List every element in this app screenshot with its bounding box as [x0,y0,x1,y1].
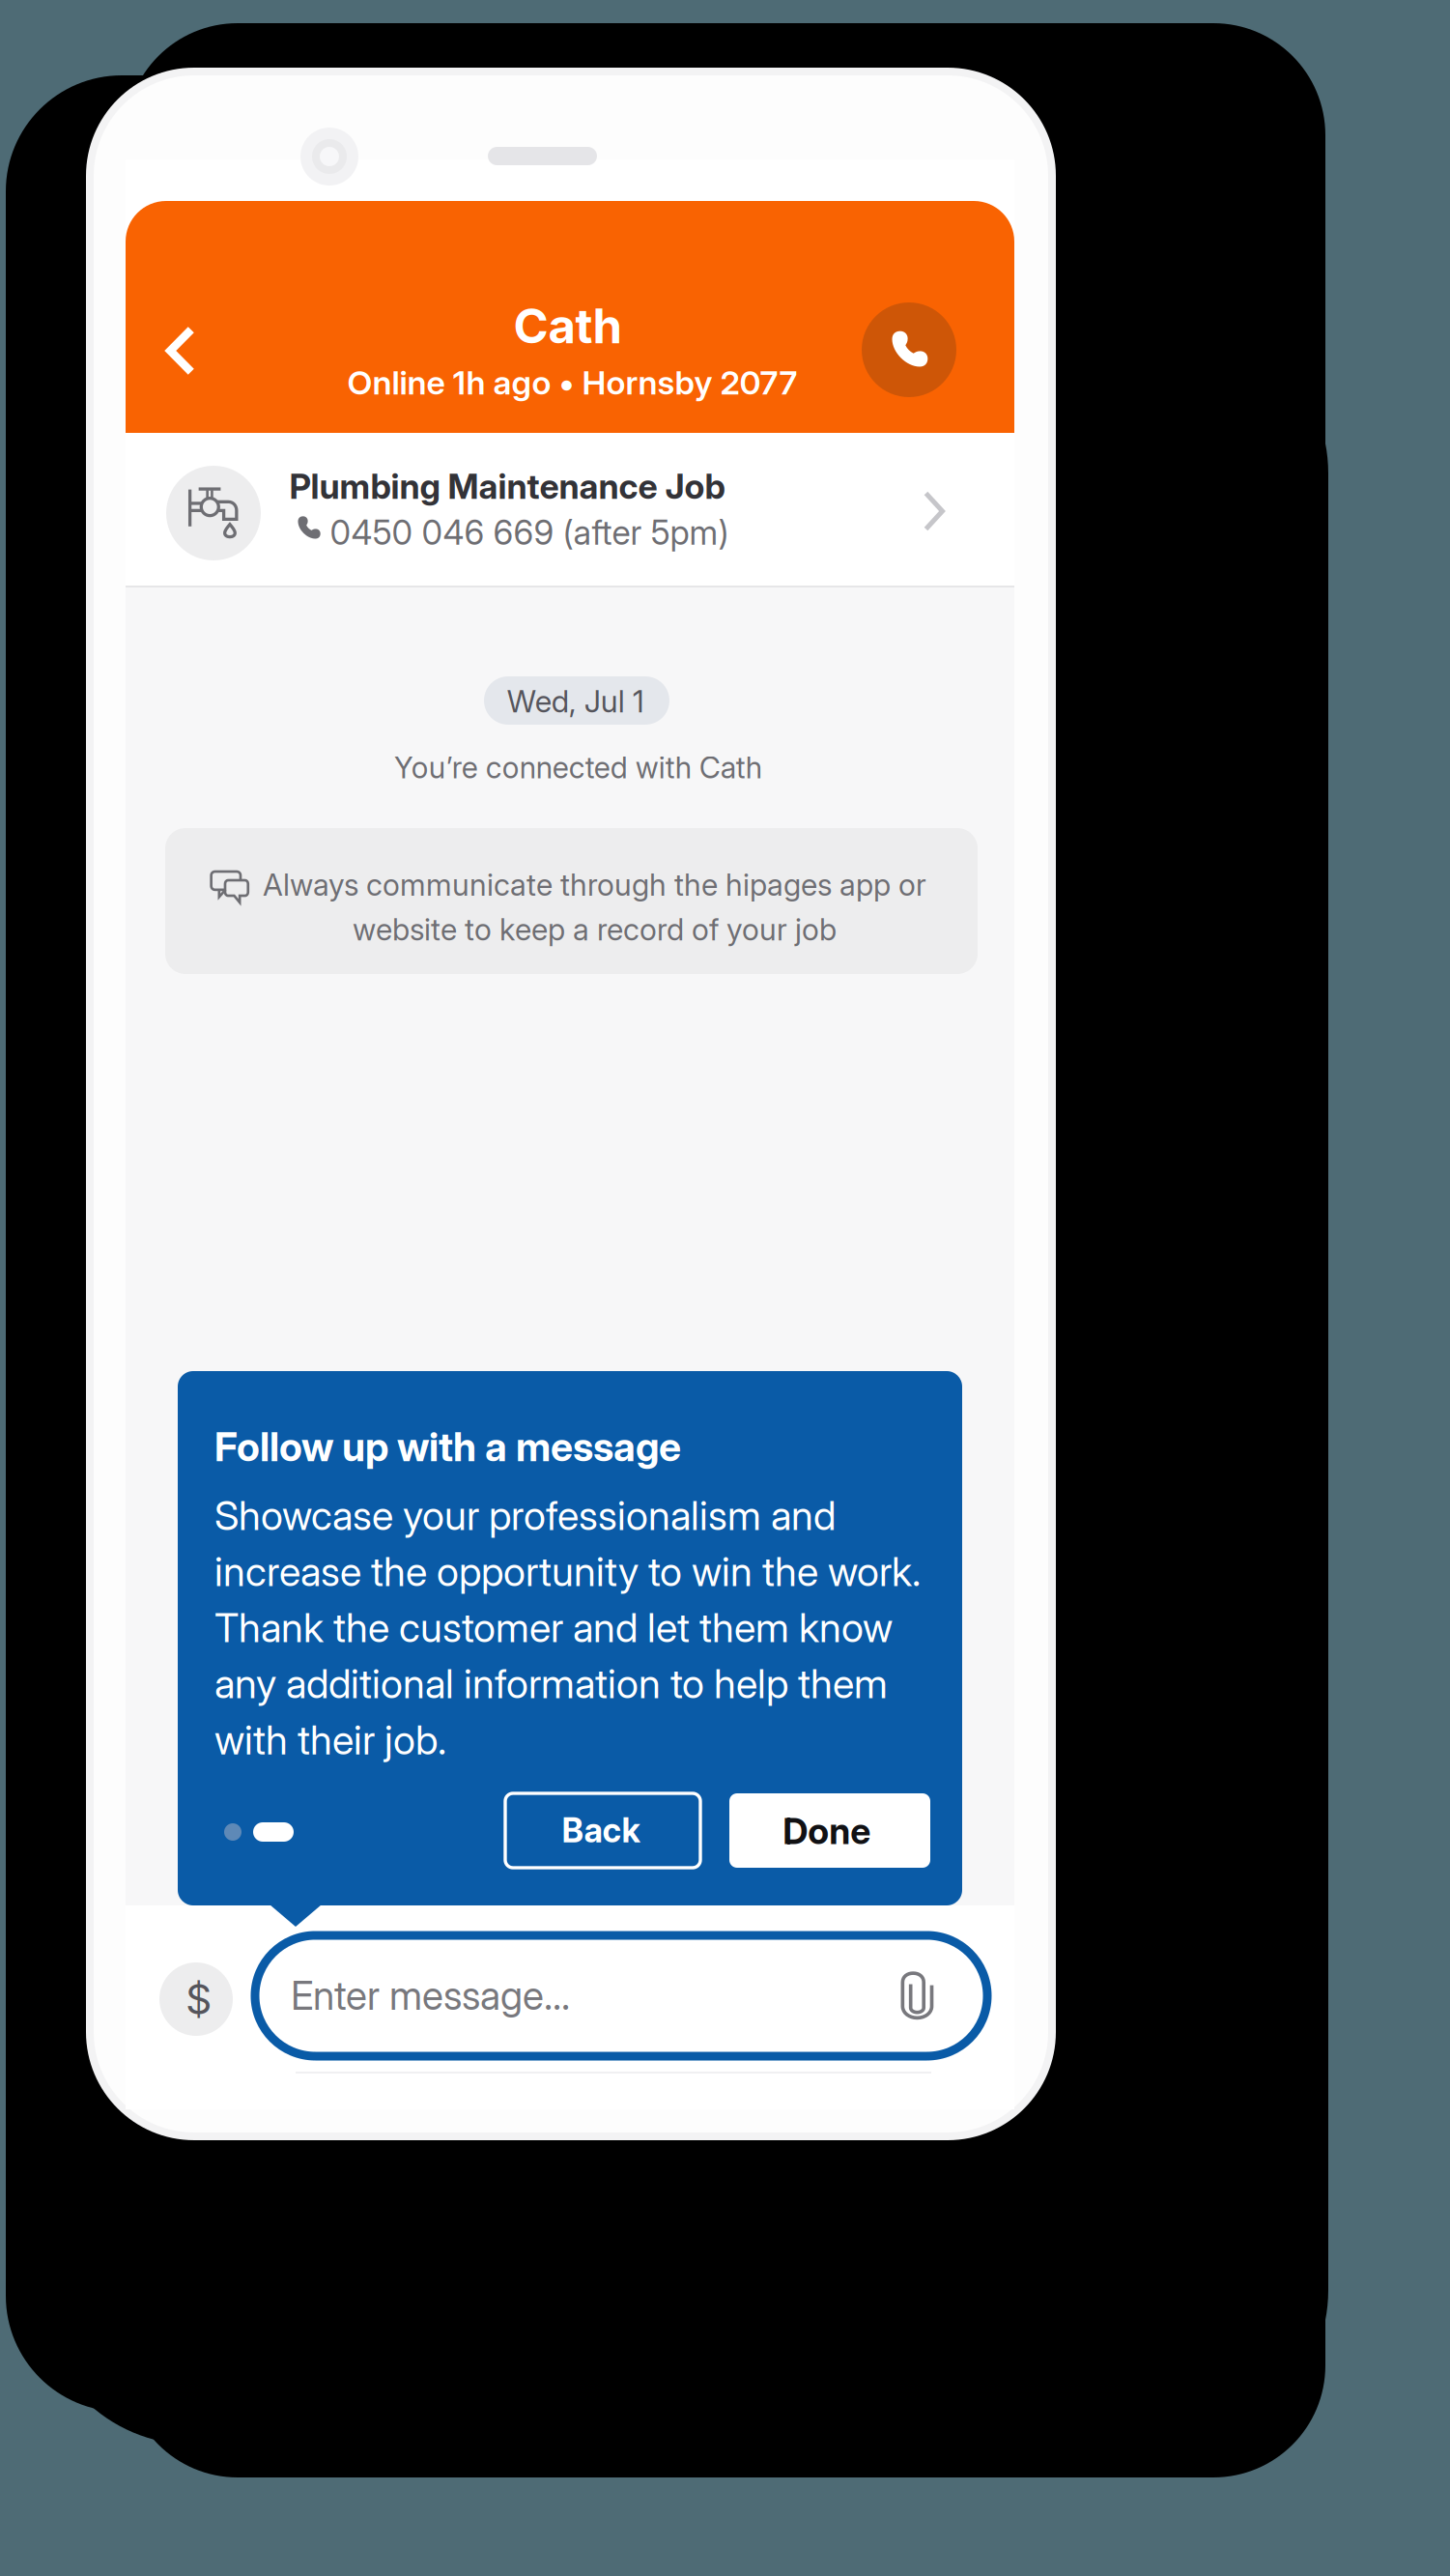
staticText: Back [562,1810,640,1850]
staticText: Plumbing Maintenance Job [289,466,725,507]
button[interactable]: Back [505,1793,700,1868]
button[interactable]: Call [862,302,956,397]
staticText: $ [185,1974,212,2024]
staticText: Enter message... [291,1972,570,2019]
button[interactable]: Done [729,1793,930,1868]
button[interactable]: Request payment [159,1962,233,2036]
staticText: Always communicate through the hipages a… [263,867,926,948]
staticText: Online 1h ago • Hornsby 2077 [347,363,798,402]
staticText: 0450 046 669 (after 5pm) [330,512,729,553]
staticText: You’re connected with Cath [394,750,762,785]
staticText: Wed, Jul 1 [507,683,644,720]
button[interactable]: Enter message... [255,1935,987,2056]
staticText: Showcase your professionalism and increa… [215,1491,921,1764]
button[interactable]: Plumbing Maintenance Job [126,433,1014,587]
staticText: Follow up with a message [215,1423,681,1471]
staticText: Cath [513,297,623,355]
button[interactable]: Back [128,298,234,404]
staticText: Done [783,1809,871,1853]
